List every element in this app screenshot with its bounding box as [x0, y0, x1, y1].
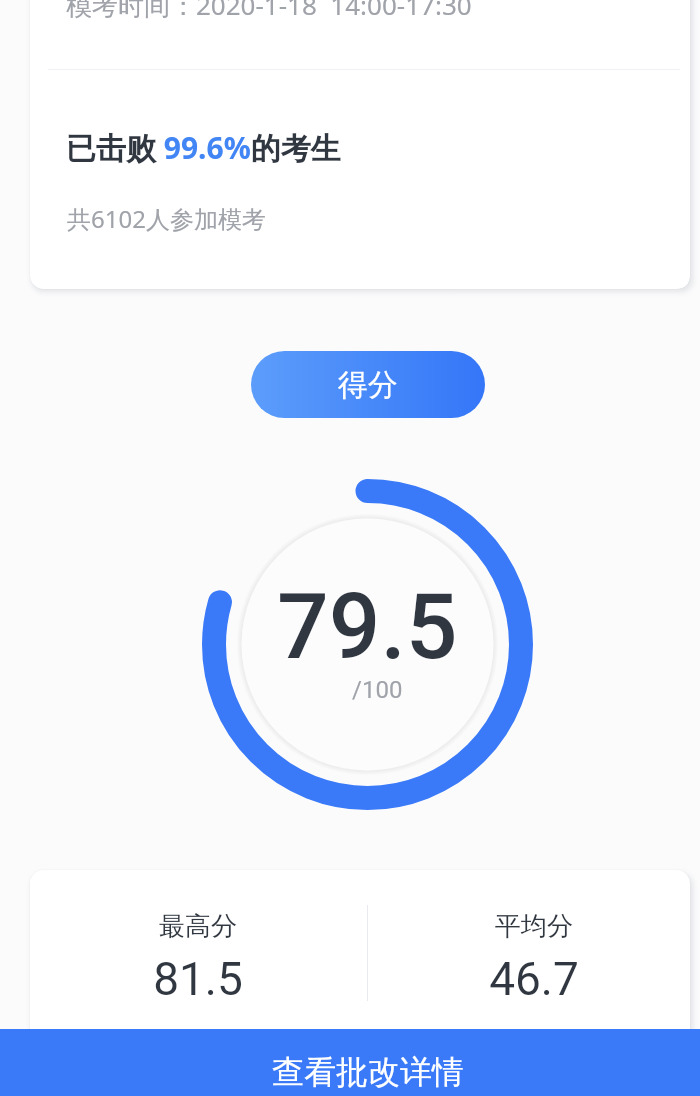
staticText: 46.7	[434, 952, 634, 1006]
staticText: 81.5	[98, 952, 298, 1006]
staticText: 最高分	[98, 910, 298, 943]
staticText: 模考时间：2020-1-18 14:00-17:30	[66, 0, 472, 23]
staticText: 共6102人参加模考	[67, 202, 266, 235]
staticText: 已击败 99.6%的考生	[66, 127, 341, 168]
staticText: 得分	[338, 366, 398, 404]
button[interactable]: 查看批改详情	[0, 1029, 700, 1096]
staticText: /100	[352, 676, 403, 704]
staticText: 79.5	[277, 574, 458, 681]
button[interactable]: 得分	[251, 351, 485, 418]
staticText: 查看批改详情	[272, 1052, 464, 1092]
staticText: 平均分	[434, 910, 634, 943]
